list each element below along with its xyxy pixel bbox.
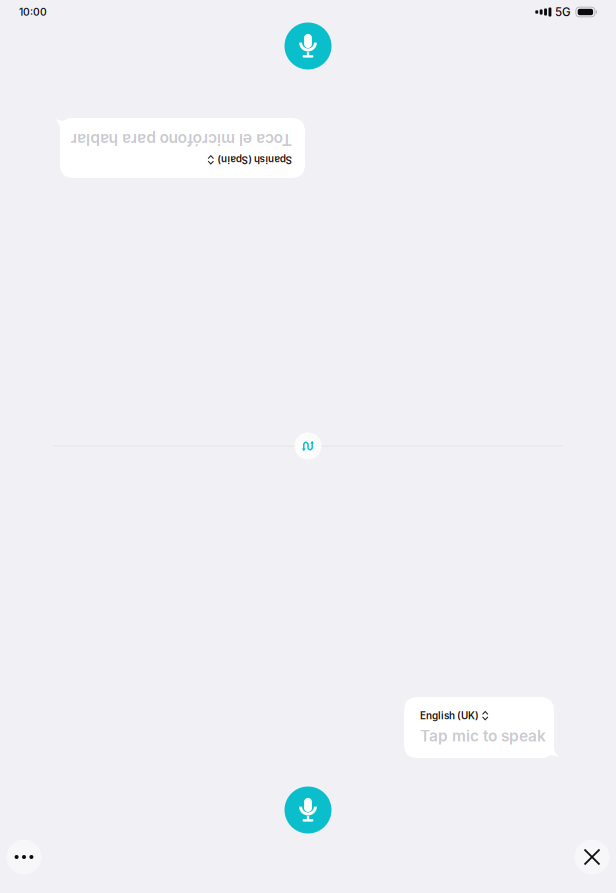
button[interactable]: Microphone, Spanish [284,22,331,69]
button[interactable]: Close [574,839,609,874]
staticText: Tap mic to speak [420,727,546,745]
staticText: 5G [555,5,571,19]
button[interactable]: Microphone, English [284,786,331,833]
button[interactable]: More options [6,839,41,874]
staticText: Spanish (Spain) [73,130,148,142]
staticText: Toca el micrófono para hablar [73,147,294,166]
staticText: 10:00 [19,6,47,18]
button[interactable]: Swap languages [293,431,323,461]
staticText: English (UK) [420,710,479,722]
